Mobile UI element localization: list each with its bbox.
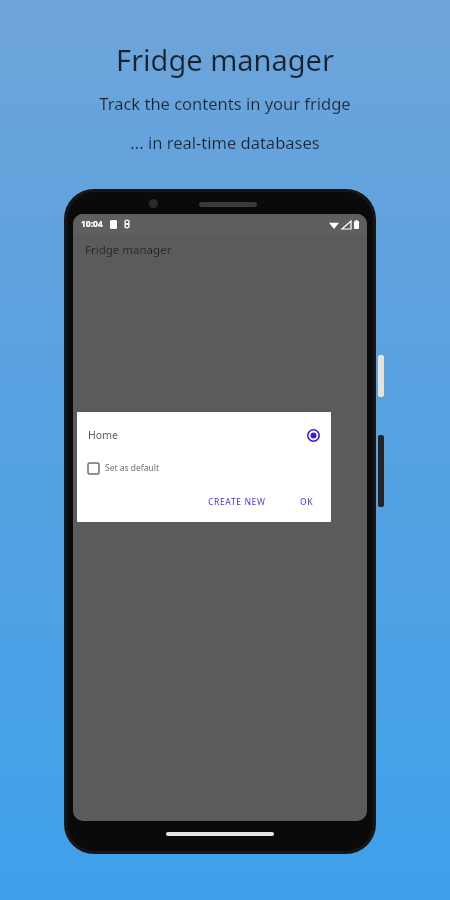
staticText: ... in real-time databases	[130, 131, 320, 153]
staticText: CREATE NEW	[208, 496, 266, 508]
staticText: Fridge manager	[85, 242, 172, 258]
button[interactable]: CREATE NEW	[202, 492, 272, 512]
button[interactable]: Set as default	[88, 460, 160, 476]
staticText: Track the contents in your fridge	[99, 92, 351, 114]
staticText: Set as default	[105, 462, 160, 474]
button[interactable]: OK	[294, 492, 320, 512]
staticText: OK	[300, 496, 314, 508]
staticText: Fridge manager	[116, 40, 334, 79]
staticText: Home	[88, 428, 307, 442]
button[interactable]: Home	[88, 424, 320, 446]
other: Select Home	[307, 429, 320, 442]
staticText: 10:04	[81, 218, 103, 230]
